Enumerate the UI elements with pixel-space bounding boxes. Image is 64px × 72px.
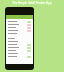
button[interactable] xyxy=(6,29,33,32)
button[interactable] xyxy=(6,52,33,55)
button[interactable] xyxy=(6,40,33,43)
button[interactable] xyxy=(6,55,33,58)
button[interactable] xyxy=(6,32,33,35)
button[interactable] xyxy=(6,49,33,52)
button[interactable] xyxy=(6,20,33,23)
button[interactable] xyxy=(6,23,33,26)
staticText: The Simple Habit Tracker App xyxy=(0,1,64,5)
button[interactable] xyxy=(6,26,33,29)
button[interactable] xyxy=(6,37,33,40)
button[interactable] xyxy=(6,43,33,46)
button[interactable] xyxy=(6,46,33,49)
